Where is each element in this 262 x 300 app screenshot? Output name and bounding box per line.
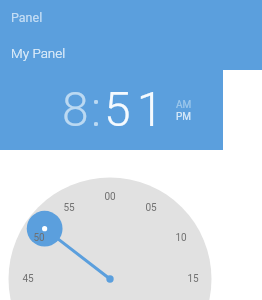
button[interactable]: AM bbox=[176, 99, 192, 111]
button[interactable]: 15 bbox=[179, 270, 207, 288]
staticText: 15 bbox=[187, 273, 199, 285]
staticText: 8 bbox=[62, 81, 89, 137]
staticText: My Panel bbox=[11, 45, 66, 61]
staticText: 00 bbox=[104, 191, 116, 203]
staticText: PM bbox=[176, 111, 192, 123]
staticText: AM bbox=[176, 99, 192, 111]
staticText: 55 bbox=[63, 202, 75, 214]
staticText: 51 bbox=[104, 81, 170, 137]
staticText: 50 bbox=[33, 232, 45, 244]
button[interactable]: 45 bbox=[14, 270, 42, 288]
staticText: : bbox=[91, 81, 102, 137]
button[interactable]: 55 bbox=[55, 199, 83, 217]
staticText: 05 bbox=[145, 202, 157, 214]
button[interactable]: Panel bbox=[11, 10, 43, 25]
staticText: 10 bbox=[175, 232, 187, 244]
button[interactable]: 00 bbox=[96, 188, 124, 206]
button[interactable]: PM bbox=[176, 111, 192, 123]
button[interactable]: 50 bbox=[25, 229, 53, 247]
button[interactable]: 10 bbox=[167, 229, 195, 247]
button[interactable]: 51 bbox=[104, 81, 170, 137]
button[interactable]: 8 bbox=[62, 81, 89, 137]
button[interactable]: 05 bbox=[137, 199, 165, 217]
staticText: Panel bbox=[11, 10, 43, 25]
staticText: 45 bbox=[22, 273, 34, 285]
